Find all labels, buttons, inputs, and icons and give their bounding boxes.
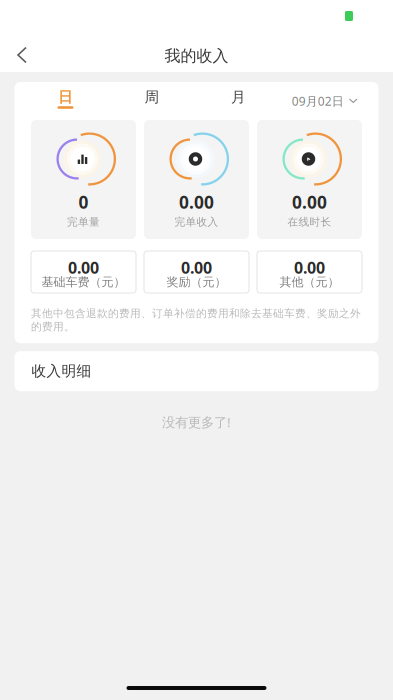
staticText: 没有更多了!: [162, 413, 231, 431]
staticText: 0.00: [68, 257, 99, 278]
button[interactable]: 周: [109, 82, 195, 120]
button[interactable]: 09月02日: [290, 82, 387, 120]
button[interactable]: 月: [195, 82, 282, 120]
staticText: 基础车费（元）: [41, 275, 125, 289]
button[interactable]: 日: [22, 82, 109, 120]
staticText: 我的收入: [164, 46, 228, 66]
button[interactable]: 收入明细: [14, 351, 378, 391]
staticText: 0.00: [294, 257, 325, 278]
staticText: 0.00: [292, 190, 327, 213]
staticText: 其他（元）: [279, 275, 339, 289]
staticText: 0: [78, 190, 88, 213]
staticText: 完单收入: [174, 215, 218, 228]
staticText: 其他中包含退款的费用、订单补偿的费用和除去基础车费、奖励之外的费用。: [31, 307, 361, 333]
staticText: 周: [144, 88, 159, 106]
staticText: 0.00: [179, 190, 214, 213]
staticText: 日: [58, 88, 73, 106]
staticText: 月: [231, 88, 246, 106]
staticText: 完单量: [67, 215, 100, 228]
button[interactable]: Back: [0, 32, 44, 72]
staticText: 奖励（元）: [166, 275, 226, 289]
staticText: 收入明细: [31, 362, 91, 380]
staticText: 0.00: [181, 257, 212, 278]
staticText: 09月02日: [292, 93, 344, 109]
staticText: 在线时长: [287, 215, 331, 228]
